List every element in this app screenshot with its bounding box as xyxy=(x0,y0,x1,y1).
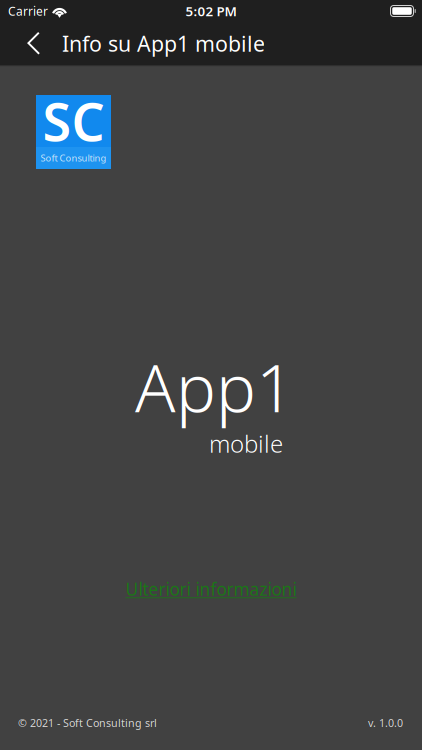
staticText: © 2021 - Soft Consulting srl xyxy=(18,716,157,730)
staticText: mobile xyxy=(209,427,283,459)
button[interactable]: Back xyxy=(0,22,62,65)
staticText: App1 xyxy=(135,342,294,430)
staticText: Soft Consulting xyxy=(40,152,106,164)
staticText: Info su App1 mobile xyxy=(62,29,265,58)
staticText: SC xyxy=(42,86,104,156)
staticText: Carrier xyxy=(8,3,48,19)
staticText: 5:02 PM xyxy=(185,2,236,20)
staticText: v. 1.0.0 xyxy=(368,716,403,730)
button[interactable]: Ulteriori informazioni xyxy=(125,577,296,600)
staticText: Ulteriori informazioni xyxy=(125,577,296,600)
